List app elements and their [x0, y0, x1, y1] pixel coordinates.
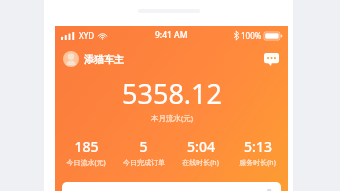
- staticText: 在线时长(h): [182, 158, 219, 168]
- staticText: 100%: [241, 30, 262, 41]
- staticText: 本月流水(元): [151, 113, 193, 123]
- staticText: 185: [74, 137, 99, 156]
- button[interactable]: 185: [57, 136, 115, 169]
- button[interactable]: 5:04: [172, 136, 229, 169]
- staticText: 5:13: [244, 137, 272, 156]
- staticText: 今日流水(元): [66, 158, 106, 168]
- staticText: 9:41 AM: [155, 29, 188, 41]
- button[interactable]: 消息: [262, 50, 280, 68]
- staticText: 今日完成订单: [123, 158, 165, 167]
- staticText: 服务时长(h): [239, 158, 276, 168]
- button[interactable]: 添猫车主: [63, 51, 124, 67]
- button[interactable]: 5:13: [229, 136, 286, 169]
- staticText: 添猫车主: [84, 53, 124, 66]
- staticText: XYD: [79, 30, 95, 41]
- staticText: 5: [139, 137, 148, 156]
- staticText: 5358.12: [122, 75, 222, 112]
- staticText: 5:04: [187, 137, 215, 156]
- button[interactable]: 5: [115, 136, 172, 168]
- button[interactable]: 我的任务: [62, 182, 281, 191]
